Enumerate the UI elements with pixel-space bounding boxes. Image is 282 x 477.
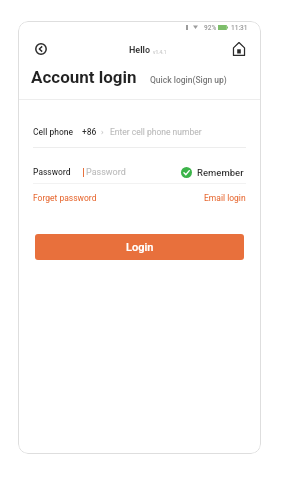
staticText: Quick login(Sign up): [150, 75, 227, 85]
staticText: Enter cell phone number: [110, 127, 202, 137]
staticText: Password: [33, 167, 71, 177]
button[interactable]: Quick login(Sign up): [150, 67, 227, 99]
staticText: Forget password: [33, 193, 97, 203]
button[interactable]: Back: [29, 37, 53, 61]
staticText: Hello: [129, 45, 151, 56]
staticText: Login: [126, 241, 154, 254]
button[interactable]: Password: [33, 165, 183, 179]
staticText: Password: [86, 167, 126, 178]
staticText: Account login: [31, 67, 137, 87]
button[interactable]: Email login: [204, 193, 246, 203]
button[interactable]: Login: [35, 234, 244, 260]
staticText: 92%: [204, 24, 217, 32]
button[interactable]: Forget password: [33, 193, 97, 203]
staticText: Email login: [204, 193, 246, 203]
staticText: 11:31: [231, 24, 248, 32]
button[interactable]: Cell phone: [33, 125, 246, 139]
button[interactable]: Home: [228, 38, 250, 60]
staticText: Cell phone: [33, 127, 74, 137]
staticText: +86: [82, 127, 97, 137]
staticText: Remember: [197, 167, 244, 178]
staticText: v1.4.1: [153, 49, 167, 55]
button[interactable]: Remember: [181, 165, 244, 179]
